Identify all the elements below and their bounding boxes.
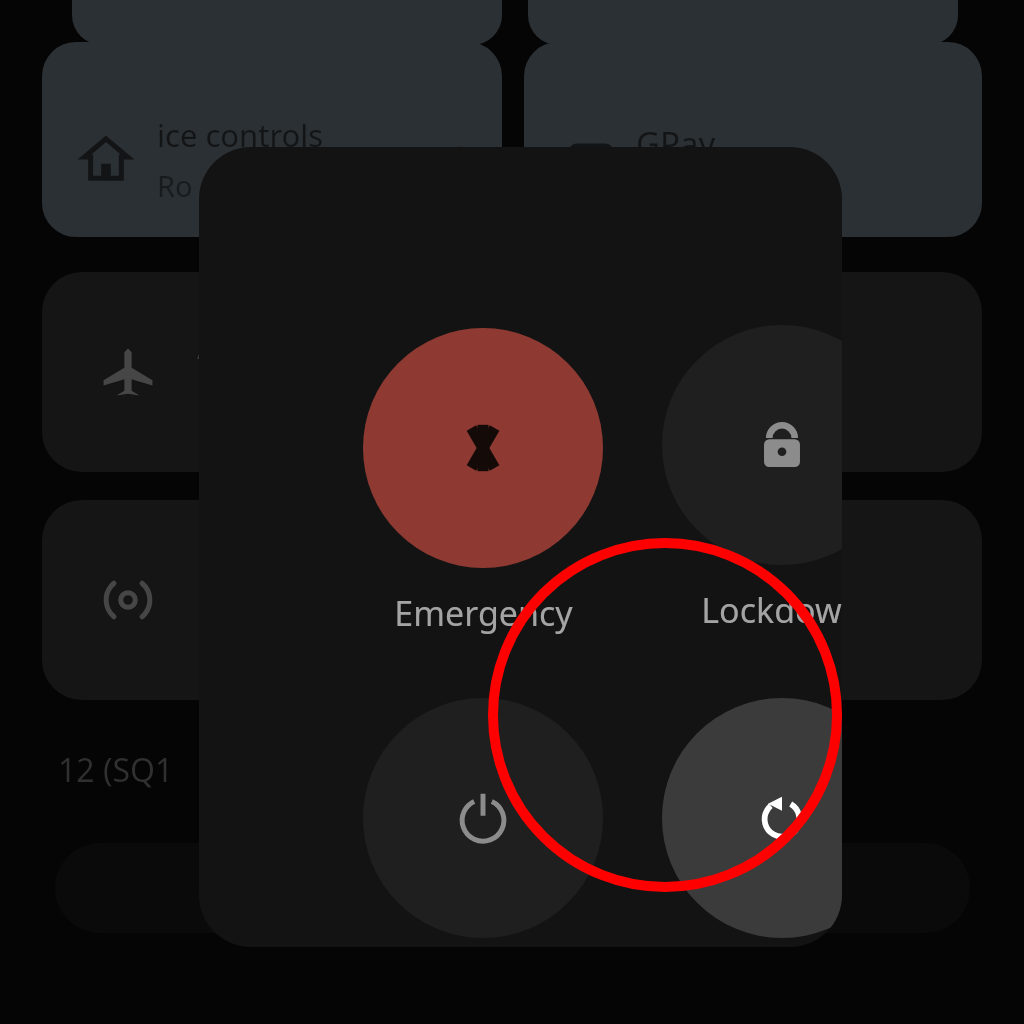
staticText: urb	[644, 350, 699, 395]
button[interactable]: Ai	[42, 272, 482, 472]
staticText: ice controls	[157, 114, 324, 156]
button[interactable]	[524, 500, 982, 700]
staticText: Emergency	[394, 590, 573, 636]
button[interactable]: Lockdown	[662, 325, 842, 633]
button[interactable]	[72, 0, 502, 45]
button[interactable]: urb	[524, 272, 982, 472]
staticText: Ro	[157, 166, 193, 205]
button[interactable]: Emergency	[363, 328, 603, 636]
button[interactable]: Power off	[363, 698, 603, 947]
button[interactable]: ice controls	[42, 42, 502, 237]
button[interactable]	[528, 0, 958, 45]
button[interactable]	[55, 843, 970, 933]
staticText: 12 (SQ1	[58, 748, 174, 792]
button[interactable]: Restart	[662, 698, 842, 947]
staticText: GPay	[636, 121, 716, 166]
button[interactable]: GPay	[524, 42, 982, 237]
staticText: Lockdown	[701, 587, 842, 633]
button[interactable]: Fo	[42, 500, 482, 700]
